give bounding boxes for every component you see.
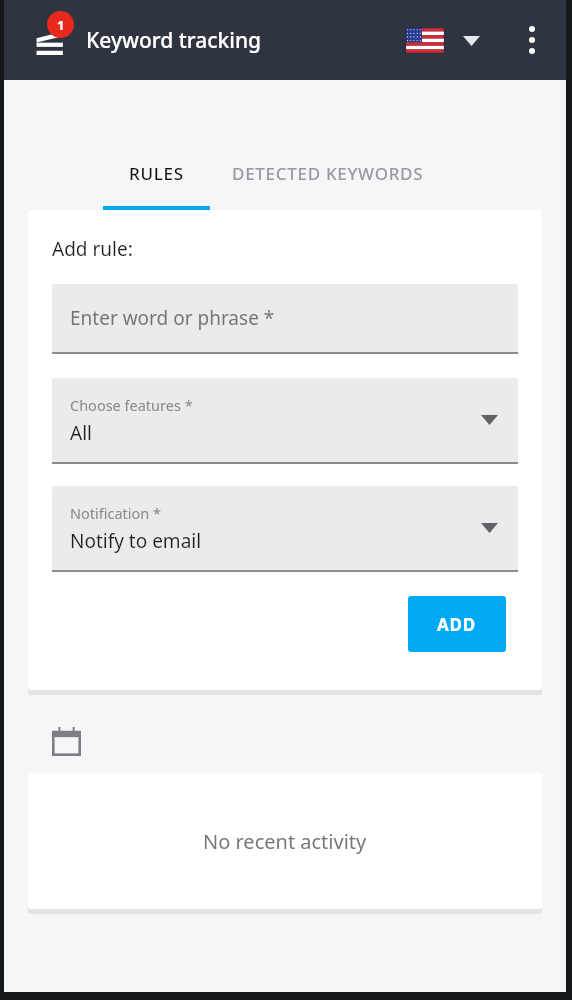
staticText: Notification * xyxy=(70,503,162,523)
staticText: RULES xyxy=(129,162,184,185)
staticText: No recent activity xyxy=(203,828,367,855)
staticText: Add rule: xyxy=(52,236,133,262)
staticText: All xyxy=(70,420,92,446)
staticText: Choose features * xyxy=(70,395,193,415)
staticText: Notify to email xyxy=(70,528,202,554)
button[interactable]: Open navigation drawer, 1 new xyxy=(22,12,78,68)
staticText: 1 xyxy=(57,16,65,34)
button[interactable]: More options xyxy=(510,18,554,62)
button[interactable]: No recent activity xyxy=(28,773,542,909)
button[interactable]: RULES xyxy=(103,148,210,210)
button[interactable]: DETECTED KEYWORDS xyxy=(228,148,428,210)
button[interactable]: Enter word or phrase * xyxy=(52,284,518,354)
button[interactable]: Change language, United States xyxy=(402,18,484,63)
button[interactable]: Notification * xyxy=(52,486,518,572)
staticText: Enter word or phrase * xyxy=(70,305,275,331)
staticText: DETECTED KEYWORDS xyxy=(232,162,424,185)
staticText: ADD xyxy=(437,613,477,636)
staticText: Keyword tracking xyxy=(86,26,262,55)
button[interactable]: Choose date range xyxy=(50,725,82,757)
button[interactable]: ADD xyxy=(408,596,506,652)
button[interactable]: Choose features * xyxy=(52,378,518,464)
